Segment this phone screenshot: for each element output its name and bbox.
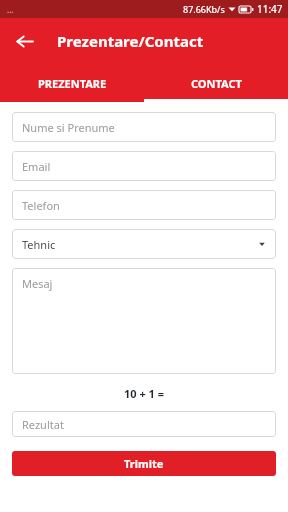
button[interactable]: PREZENTARE — [0, 64, 144, 102]
staticText: Trimite — [124, 456, 164, 471]
staticText: 11:47 — [257, 2, 283, 16]
staticText: 10 + 1 = — [12, 386, 276, 401]
staticText: CONTACT — [191, 76, 242, 91]
button[interactable]: Tehnic — [12, 229, 276, 259]
staticText: Prezentare/Contact — [57, 31, 204, 51]
staticText: PREZENTARE — [38, 76, 107, 91]
button[interactable]: Mesaj — [12, 268, 276, 374]
button[interactable]: Trimite — [12, 451, 276, 476]
button[interactable]: Email — [12, 151, 276, 181]
button[interactable]: Telefon — [12, 190, 276, 220]
button[interactable]: Rezultat — [12, 411, 276, 437]
staticText: 87.66Kb/s — [183, 3, 225, 15]
staticText: Telefon — [22, 198, 60, 213]
staticText: ... — [7, 4, 14, 15]
staticText: Tehnic — [22, 237, 56, 252]
button[interactable]: Back — [8, 25, 40, 57]
button[interactable]: CONTACT — [144, 64, 288, 102]
staticText: Mesaj — [22, 276, 53, 291]
button[interactable]: Nume si Prenume — [12, 112, 276, 142]
staticText: Nume si Prenume — [22, 120, 115, 135]
staticText: Rezultat — [22, 417, 64, 432]
staticText: Email — [22, 159, 51, 174]
